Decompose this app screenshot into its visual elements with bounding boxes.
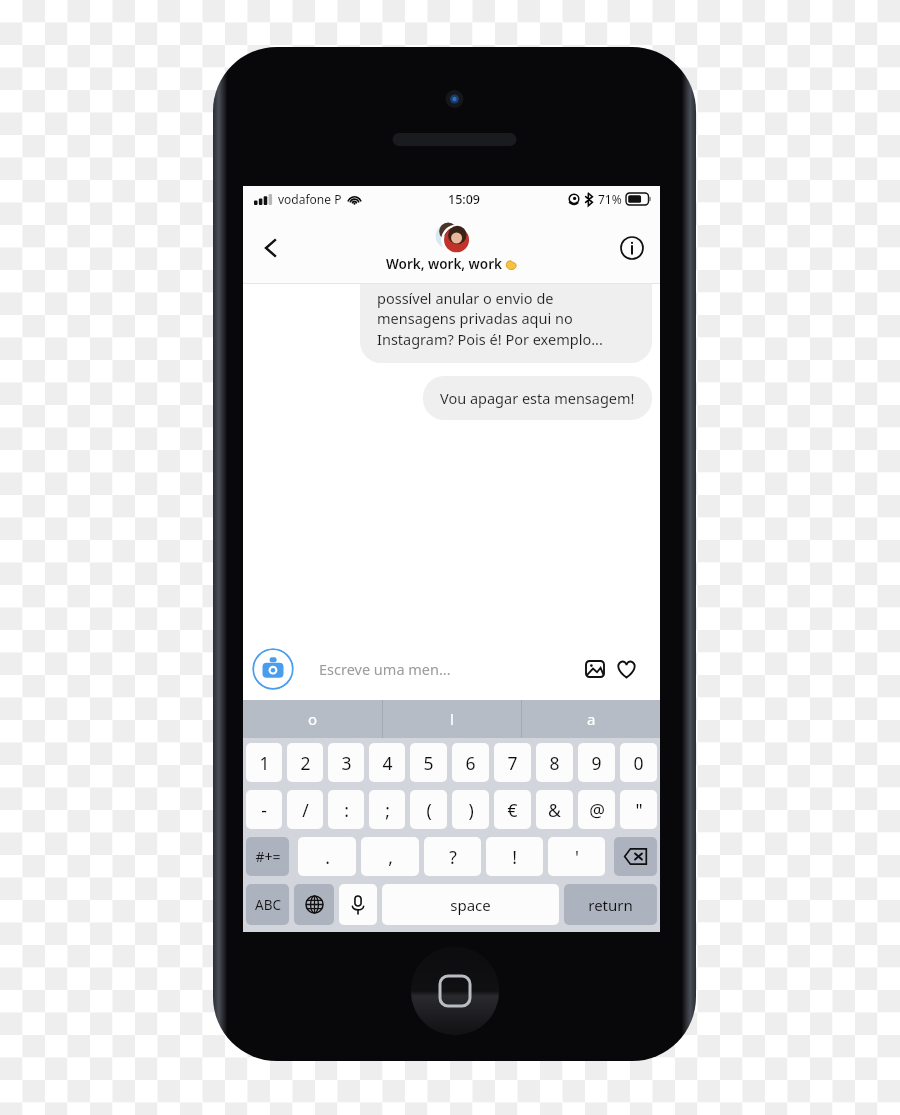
button[interactable]: ABC: [246, 884, 289, 925]
button[interactable]: Change keyboard language: [294, 884, 334, 925]
button[interactable]: ;: [369, 790, 405, 829]
staticText: 1: [259, 751, 270, 775]
staticText: Escreve uma men...: [319, 659, 451, 679]
button[interactable]: -: [246, 790, 282, 829]
staticText: (: [426, 798, 432, 822]
staticText: &: [548, 798, 561, 822]
button[interactable]: /: [287, 790, 323, 829]
button[interactable]: 2: [287, 743, 323, 782]
button[interactable]: :: [328, 790, 364, 829]
staticText: 2: [300, 751, 311, 775]
button[interactable]: Vou apagar esta mensagem!: [423, 376, 652, 420]
staticText: ?: [449, 845, 457, 869]
staticText: ;: [385, 798, 390, 822]
staticText: @: [589, 798, 605, 822]
staticText: ": [635, 798, 643, 822]
button[interactable]: @: [578, 790, 615, 829]
staticText: l: [450, 709, 454, 729]
staticText: possível anular o envio de mensagens pri…: [377, 288, 635, 350]
staticText: 8: [549, 751, 560, 775]
button[interactable]: ,: [361, 837, 419, 876]
staticText: 7: [507, 751, 518, 775]
staticText: Work, work, work: [386, 255, 502, 273]
button[interactable]: 3: [328, 743, 364, 782]
button[interactable]: ): [452, 790, 489, 829]
staticText: ): [468, 798, 474, 822]
staticText: space: [450, 895, 491, 915]
button[interactable]: &: [536, 790, 573, 829]
button[interactable]: 8: [536, 743, 573, 782]
button[interactable]: 7: [494, 743, 531, 782]
staticText: €: [507, 798, 518, 822]
staticText: vodafone P: [278, 191, 342, 207]
staticText: return: [588, 895, 633, 915]
staticText: 4: [382, 751, 393, 775]
staticText: ,: [388, 845, 393, 869]
button[interactable]: .: [298, 837, 356, 876]
button[interactable]: €: [494, 790, 531, 829]
staticText: .: [325, 845, 330, 869]
button[interactable]: Conversation info: [612, 228, 652, 268]
staticText: 15:09: [448, 191, 481, 208]
button[interactable]: a: [522, 700, 660, 738]
button[interactable]: possível anular o envio de mensagens pri…: [360, 284, 652, 363]
button[interactable]: ?: [424, 837, 481, 876]
button[interactable]: !: [486, 837, 543, 876]
button[interactable]: #+=: [246, 837, 289, 876]
button[interactable]: l: [383, 700, 521, 738]
staticText: a: [587, 709, 596, 729]
staticText: 5: [423, 751, 434, 775]
button[interactable]: 1: [246, 743, 282, 782]
button[interactable]: 6: [452, 743, 489, 782]
staticText: :: [344, 798, 349, 822]
staticText: 3: [341, 751, 352, 775]
button[interactable]: 4: [369, 743, 405, 782]
button[interactable]: 9: [578, 743, 615, 782]
button[interactable]: (: [410, 790, 447, 829]
button[interactable]: Dictate: [339, 884, 377, 925]
staticText: o: [308, 709, 318, 729]
button[interactable]: space: [382, 884, 559, 925]
button[interactable]: Escreve uma men...: [302, 648, 651, 690]
button[interactable]: ': [548, 837, 605, 876]
button[interactable]: o: [243, 700, 382, 738]
button[interactable]: Work, work, work: [378, 221, 526, 275]
staticText: 6: [465, 751, 476, 775]
staticText: -: [261, 798, 267, 822]
button[interactable]: Camera: [252, 648, 294, 690]
button[interactable]: 5: [410, 743, 447, 782]
staticText: 9: [591, 751, 602, 775]
staticText: ': [575, 845, 579, 869]
staticText: ABC: [255, 896, 281, 914]
button[interactable]: ": [620, 790, 657, 829]
staticText: 71%: [598, 191, 622, 207]
button[interactable]: Back: [249, 226, 293, 270]
button[interactable]: 0: [620, 743, 657, 782]
button[interactable]: return: [564, 884, 657, 925]
staticText: !: [512, 845, 517, 869]
button[interactable]: Delete: [614, 837, 657, 876]
staticText: /: [302, 798, 309, 822]
staticText: #+=: [255, 847, 281, 866]
staticText: Vou apagar esta mensagem!: [440, 388, 635, 408]
staticText: 0: [633, 751, 644, 775]
